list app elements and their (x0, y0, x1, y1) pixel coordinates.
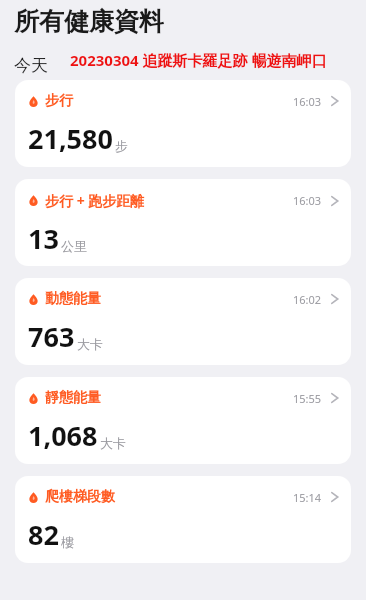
staticText: 21,580 (28, 120, 113, 157)
staticText: 今天 (14, 55, 48, 76)
button[interactable]: 爬樓梯段數 (15, 476, 351, 563)
button[interactable]: 靜態能量 (15, 377, 351, 464)
staticText: 步 (115, 138, 128, 154)
staticText: 爬樓梯段數 (45, 488, 115, 506)
button[interactable]: 步行 (15, 80, 351, 167)
button[interactable]: 步行 + 跑步距離 (15, 179, 351, 266)
button[interactable]: Open details (330, 193, 340, 209)
staticText: 1,068 (28, 417, 98, 454)
staticText: 82 (28, 516, 59, 553)
staticText: 16:02 (293, 292, 322, 307)
button[interactable]: 動態能量 (15, 278, 351, 365)
staticText: 763 (28, 318, 75, 355)
button[interactable]: Open details (330, 489, 340, 505)
staticText: 13 (28, 220, 59, 257)
staticText: 步行 + 跑步距離 (45, 191, 145, 210)
staticText: 大卡 (100, 435, 126, 451)
staticText: 大卡 (77, 336, 103, 352)
staticText: 動態能量 (45, 290, 101, 308)
button[interactable]: Open details (330, 390, 340, 406)
staticText: 16:03 (293, 193, 322, 208)
staticText: 所有健康資料 (14, 6, 164, 37)
button[interactable]: Open details (330, 93, 340, 109)
staticText: 步行 (45, 92, 73, 110)
staticText: 靜態能量 (45, 389, 101, 407)
staticText: 樓 (61, 534, 74, 550)
staticText: 20230304 追蹤斯卡羅足跡 暢遊南岬口 (70, 50, 327, 70)
staticText: 15:55 (293, 391, 322, 406)
button[interactable]: Open details (330, 291, 340, 307)
staticText: 15:14 (293, 490, 322, 505)
staticText: 公里 (61, 238, 87, 254)
staticText: 16:03 (293, 94, 322, 109)
